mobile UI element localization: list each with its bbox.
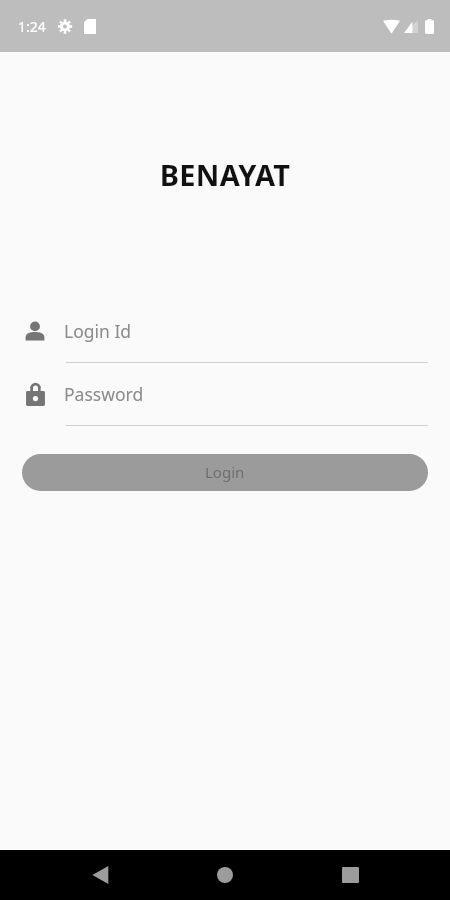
- staticText: 1:24: [18, 17, 46, 36]
- staticText: Password: [64, 382, 144, 406]
- button[interactable]: Login Id: [0, 300, 450, 363]
- button[interactable]: Recent apps: [320, 850, 380, 900]
- button[interactable]: Login: [22, 454, 428, 491]
- staticText: BENAYAT: [0, 155, 450, 194]
- staticText: Login Id: [64, 319, 132, 343]
- staticText: Login: [205, 462, 245, 482]
- button[interactable]: Password: [0, 363, 450, 426]
- button[interactable]: Home: [195, 850, 255, 900]
- button[interactable]: Back: [70, 850, 130, 900]
